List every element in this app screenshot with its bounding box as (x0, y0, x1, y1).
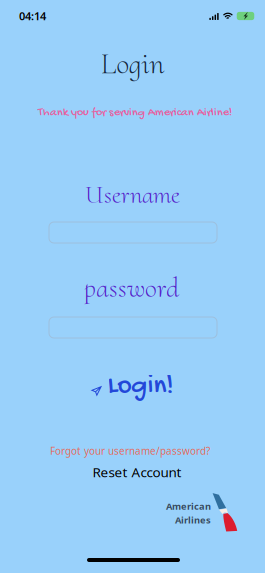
staticText: Username (85, 180, 180, 210)
staticText: password (84, 271, 179, 304)
staticText: Login (100, 46, 164, 82)
staticText: Reset Account (92, 463, 181, 481)
staticText: 04:14 (19, 8, 46, 24)
staticText: Airlines (175, 513, 211, 526)
button[interactable]: Forgot your username/password? (50, 444, 210, 458)
staticText: Thank you for serving American Airline! (38, 106, 232, 120)
staticText: Forgot your username/password? (50, 444, 210, 458)
staticText: American (166, 500, 211, 512)
staticText: Login! (107, 371, 173, 403)
button[interactable]: Login! (90, 374, 180, 398)
button[interactable]: Reset Account (92, 463, 181, 481)
